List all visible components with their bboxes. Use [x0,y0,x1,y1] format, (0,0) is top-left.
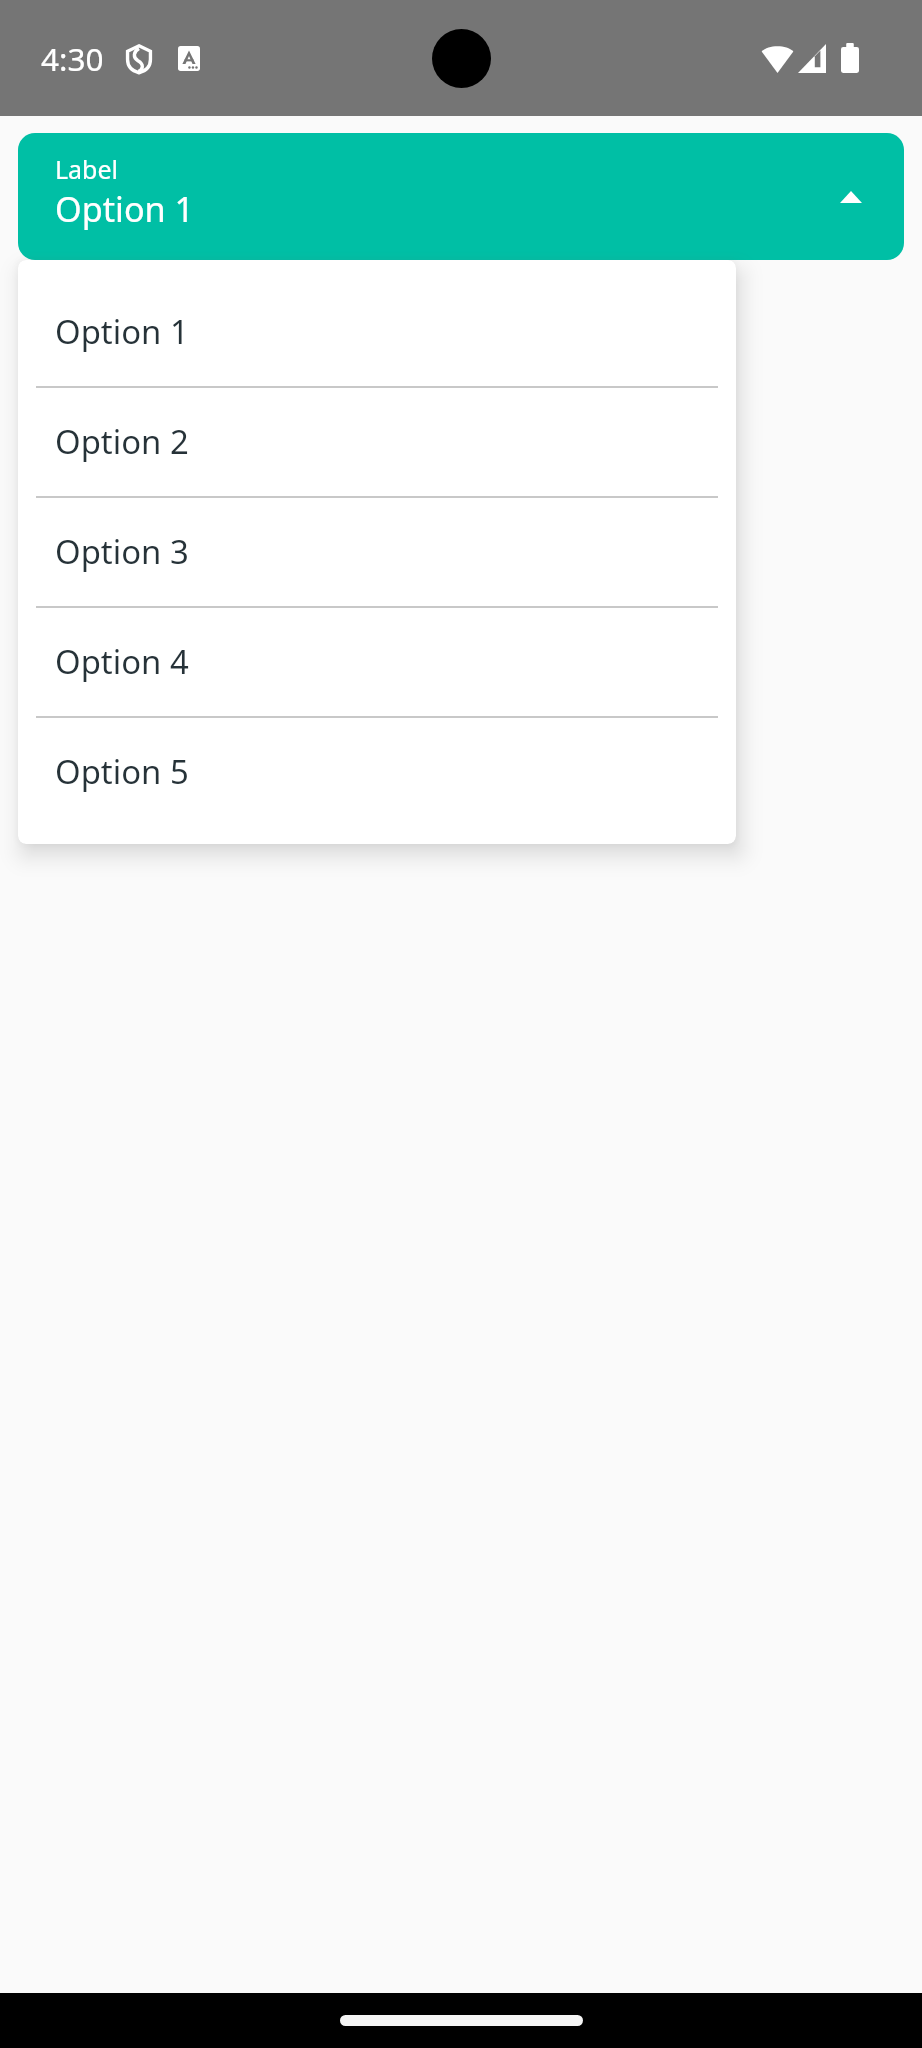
staticText: Option 1 [55,309,189,354]
staticText: Option 5 [55,749,189,794]
staticText: Option 2 [55,419,189,464]
staticText: Option 4 [55,639,189,684]
button[interactable]: Option 2 [18,388,736,496]
button[interactable]: Option 3 [18,498,736,606]
button[interactable]: Option 4 [18,608,736,716]
button[interactable]: Label [18,133,904,260]
staticText: Label [55,152,118,186]
staticText: Option 3 [55,529,189,574]
button[interactable]: Option 1 [18,278,736,386]
staticText: 4:30 [41,37,104,80]
button[interactable]: Option 5 [18,718,736,826]
other: Collapse dropdown [840,191,862,203]
staticText: Option 1 [55,185,195,232]
